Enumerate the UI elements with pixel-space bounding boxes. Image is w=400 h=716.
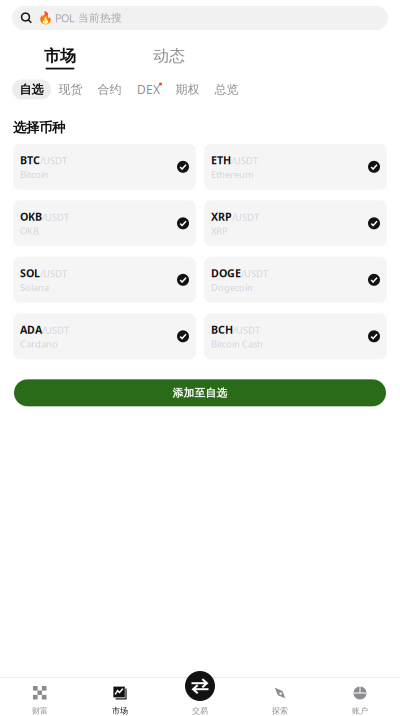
staticText: Dogecoin	[211, 281, 253, 294]
staticText: BTC	[20, 153, 40, 167]
staticText: 市场	[112, 706, 128, 716]
button[interactable]: 合约	[90, 79, 129, 99]
staticText: Ethereum	[211, 168, 254, 181]
staticText: XRP	[211, 209, 232, 224]
button[interactable]: 🔥	[12, 6, 388, 30]
staticText: ADA	[20, 322, 42, 337]
staticText: 选择币种	[13, 119, 65, 136]
button[interactable]: ETH	[204, 144, 387, 190]
staticText: OKB	[20, 209, 42, 224]
staticText: 自选	[19, 82, 43, 97]
staticText: DOGE	[211, 266, 241, 280]
staticText: /USDT	[232, 211, 259, 223]
button[interactable]: 市场	[30, 46, 90, 69]
button[interactable]: DOGE	[204, 257, 387, 303]
button[interactable]: 账户	[320, 670, 400, 716]
staticText: OKB	[20, 225, 39, 237]
button[interactable]: 市场	[80, 670, 160, 716]
button[interactable]: 交易	[160, 670, 240, 716]
staticText: /USDT	[42, 324, 69, 336]
staticText: /USDT	[233, 324, 260, 336]
staticText: SOL	[20, 266, 40, 280]
button[interactable]: 现货	[51, 79, 90, 99]
staticText: /USDT	[42, 211, 69, 223]
button[interactable]: 财富	[0, 670, 80, 716]
button[interactable]: 添加至自选	[14, 379, 386, 406]
staticText: 添加至自选	[172, 386, 227, 399]
button[interactable]: DEX	[129, 79, 168, 99]
staticText: 现货	[58, 82, 82, 97]
staticText: /USDT	[40, 267, 67, 280]
staticText: 🔥	[38, 11, 53, 25]
staticText: Bitcoin Cash	[211, 338, 263, 350]
button[interactable]: 探索	[240, 670, 320, 716]
staticText: DEX	[137, 81, 160, 97]
button[interactable]: 动态	[139, 46, 199, 66]
button[interactable]: BCH	[204, 313, 387, 359]
button[interactable]: SOL	[13, 257, 196, 303]
staticText: XRP	[211, 225, 228, 237]
staticText: Solana	[20, 281, 49, 294]
staticText: Bitcoin	[20, 168, 49, 181]
staticText: Cardano	[20, 338, 58, 350]
staticText: 当前热搜	[78, 11, 122, 24]
staticText: 交易	[192, 706, 208, 716]
button[interactable]: 期权	[168, 79, 207, 99]
staticText: /USDT	[241, 267, 268, 280]
staticText: 账户	[352, 706, 368, 716]
staticText: 总览	[214, 82, 238, 97]
staticText: 合约	[97, 82, 121, 97]
button[interactable]: OKB	[13, 200, 196, 246]
staticText: 财富	[32, 706, 48, 716]
staticText: BCH	[211, 322, 233, 337]
button[interactable]: XRP	[204, 200, 387, 246]
staticText: 探索	[272, 706, 288, 716]
staticText: 期权	[175, 82, 199, 97]
staticText: /USDT	[40, 154, 67, 167]
button[interactable]: ADA	[13, 313, 196, 359]
staticText: 市场	[44, 46, 76, 66]
staticText: POL	[55, 11, 75, 25]
staticText: ETH	[211, 153, 231, 167]
staticText: /USDT	[231, 154, 258, 167]
button[interactable]: BTC	[13, 144, 196, 190]
staticText: 动态	[153, 46, 185, 66]
button[interactable]: 自选	[12, 79, 51, 99]
button[interactable]: 总览	[207, 79, 246, 99]
